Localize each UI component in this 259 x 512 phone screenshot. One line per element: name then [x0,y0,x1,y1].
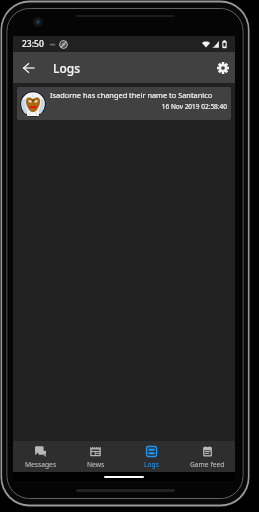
button[interactable]: Messages [13,441,68,472]
button[interactable]: News [68,441,123,472]
staticText: Game feed [190,460,225,469]
staticText: Logs [53,60,81,76]
staticText: 23:50 [22,38,44,50]
button[interactable]: Logs [123,441,179,472]
button[interactable]: Settings [212,52,234,83]
button[interactable]: Navigate up [17,52,40,83]
button[interactable]: Isadorne has changed their name to Santa… [17,87,231,120]
staticText: Isadorne has changed their name to Santa… [50,90,213,100]
staticText: 16 Nov 2019 02:58:40 [50,102,227,111]
staticText: Logs [144,460,159,469]
staticText: Messages [25,460,57,469]
button[interactable]: Game feed [179,441,235,472]
staticText: News [87,460,105,469]
